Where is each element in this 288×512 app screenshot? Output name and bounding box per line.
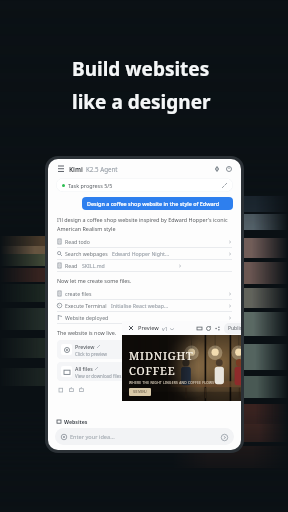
button[interactable]: Design a coffee shop website in the styl…	[82, 197, 233, 210]
button[interactable]: Website deployed	[48, 312, 241, 323]
staticText: American Realism style	[57, 225, 116, 232]
staticText: Kimi	[69, 165, 83, 173]
staticText: MIDNIGHT	[129, 348, 194, 363]
staticText: Read todo	[65, 238, 90, 245]
staticText: create files	[65, 290, 92, 297]
staticText: COFFEE	[129, 363, 176, 378]
button[interactable]: v1	[162, 325, 174, 332]
button[interactable]: Copy	[57, 385, 65, 393]
button[interactable]: History	[224, 164, 233, 173]
staticText: K2.5 Agent	[86, 165, 118, 173]
staticText: Now let me create some files.	[57, 277, 132, 284]
button[interactable]: Task progress 5/5	[56, 178, 233, 192]
staticText: I'll design a coffee shop website inspir…	[57, 216, 228, 223]
staticText: Search webpages	[65, 250, 108, 257]
button[interactable]: Menu	[56, 164, 65, 173]
button[interactable]: create files	[48, 288, 241, 299]
staticText: Task progress 5/5	[68, 182, 113, 189]
staticText: Published	[228, 325, 241, 332]
button[interactable]: Read	[48, 260, 241, 271]
button[interactable]: Refresh	[204, 324, 213, 333]
button[interactable]: Published	[224, 323, 241, 334]
staticText: Website deployed	[65, 314, 109, 321]
staticText: Read	[65, 262, 78, 269]
staticText: Preview	[138, 324, 159, 332]
staticText: like a designer	[72, 89, 211, 115]
staticText: Design a coffee shop website in the styl…	[87, 200, 228, 207]
button[interactable]: Settings	[212, 164, 221, 173]
staticText: SKILL.md	[82, 262, 105, 269]
staticText: v1	[162, 325, 168, 332]
staticText: Enter your idea...	[70, 433, 115, 441]
staticText: Preview	[75, 343, 95, 350]
button[interactable]: Like	[67, 385, 75, 393]
button[interactable]: Device	[195, 324, 204, 333]
staticText: All files	[75, 365, 93, 372]
button[interactable]: Enter your idea...	[55, 428, 234, 445]
button[interactable]: Dislike	[77, 385, 85, 393]
staticText: Websites	[64, 418, 88, 425]
staticText: SEE MENU	[133, 390, 147, 394]
button[interactable]: Close preview	[127, 324, 135, 332]
button[interactable]: Read todo	[48, 236, 241, 247]
button[interactable]: Search webpages	[48, 248, 241, 259]
button[interactable]: Send	[220, 433, 228, 441]
button[interactable]: All files	[57, 362, 135, 381]
button[interactable]: Preview	[57, 340, 135, 359]
staticText: Click to preview	[75, 351, 108, 357]
button[interactable]: Share	[213, 324, 222, 333]
staticText: The website is now live.	[57, 329, 117, 336]
button[interactable]: SEE MENU	[129, 388, 151, 396]
staticText: View or download files	[75, 373, 122, 379]
staticText: WHERE THE NIGHT LINGERS AND COFFEE FLOWS	[129, 381, 215, 385]
staticText: Initialise React webapp project	[111, 302, 169, 309]
staticText: Build websites	[72, 56, 210, 82]
staticText: Edward Hopper Nighthawks painting Edward…	[112, 250, 170, 257]
staticText: Execute Terminal	[65, 302, 107, 309]
button[interactable]: Execute Terminal	[48, 300, 241, 311]
